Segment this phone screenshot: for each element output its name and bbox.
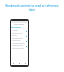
staticText: Design systems guide — [12, 29, 25, 32]
staticText: Bookmarks — [14, 23, 25, 26]
button[interactable]: Tab — [16, 61, 22, 65]
staticText: medium.com — [12, 32, 23, 34]
staticText: Compose layout basics — [12, 39, 25, 42]
button[interactable]: Design systems guide — [11, 29, 28, 34]
staticText: m3.material.io — [12, 47, 24, 49]
staticText: developer.android — [12, 42, 25, 44]
button[interactable]: Material you colors — [11, 44, 28, 49]
staticText: kotlinlang.org — [12, 37, 24, 39]
button[interactable]: Tab — [11, 61, 16, 65]
staticText: Material you colors — [12, 44, 25, 47]
staticText: Kotlin coroutines — [12, 34, 25, 37]
button[interactable]: Compose layout basics — [11, 39, 28, 44]
button[interactable]: Kotlin coroutines — [11, 34, 28, 39]
button[interactable]: Tab — [22, 61, 28, 65]
staticText: Bookmark content to read or reference la… — [5, 4, 59, 11]
